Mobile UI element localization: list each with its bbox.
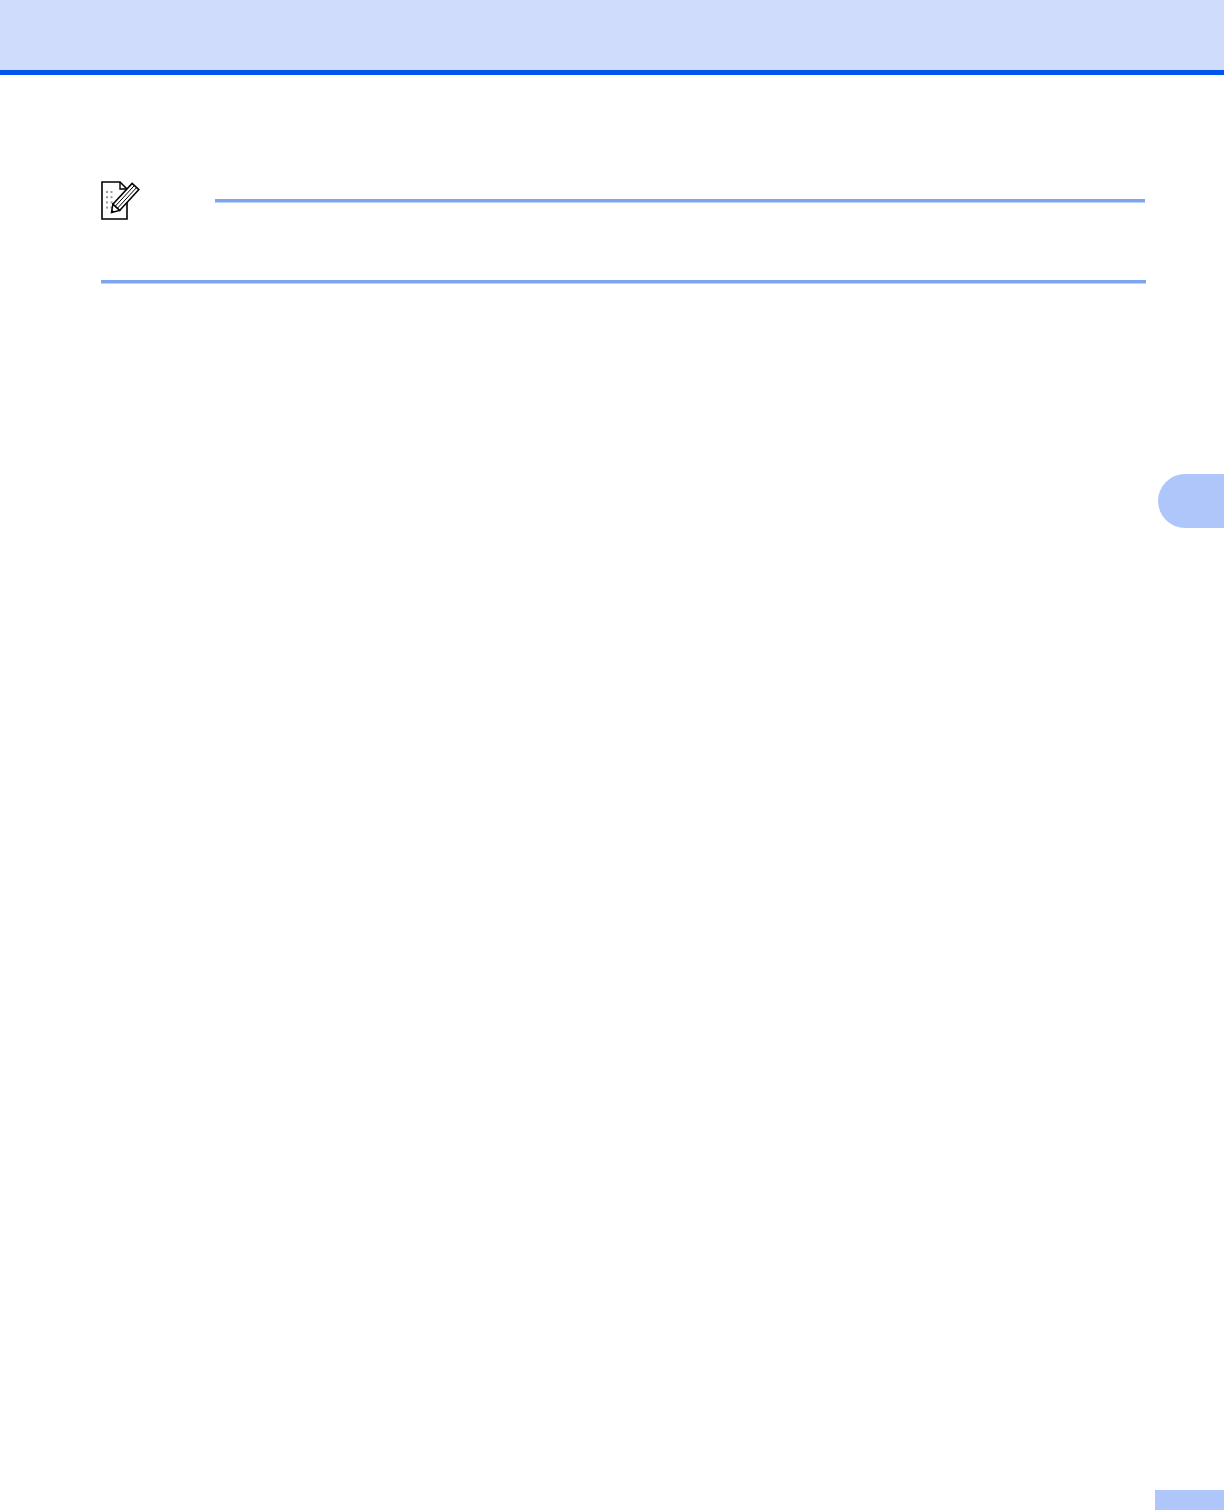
- button[interactable]: Note: [100, 179, 140, 223]
